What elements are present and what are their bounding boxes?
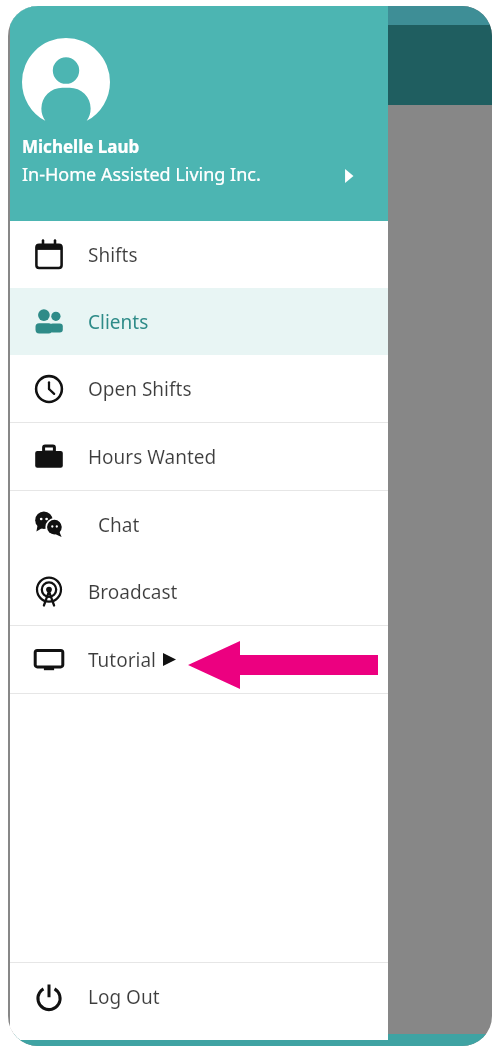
button[interactable]: Chat	[10, 491, 388, 558]
staticText: Hours Wanted	[88, 444, 217, 470]
button[interactable]: Shifts	[10, 221, 388, 288]
button[interactable]: Tutorial	[10, 626, 388, 693]
staticText: Michelle Laub	[22, 135, 140, 158]
staticText: Log Out	[88, 984, 160, 1010]
button[interactable]: Michelle Laub	[10, 6, 388, 221]
staticText: Shifts	[88, 242, 138, 268]
staticText: Broadcast	[88, 579, 178, 605]
staticText: Tutorial	[88, 647, 157, 673]
staticText: In-Home Assisted Living Inc.	[22, 162, 261, 187]
staticText: Clients	[88, 309, 149, 335]
other: Expand account	[342, 169, 356, 183]
staticText: Chat	[98, 512, 140, 538]
button[interactable]: Log Out	[10, 963, 388, 1030]
button[interactable]: Clients	[10, 288, 388, 355]
button[interactable]: Open Shifts	[10, 355, 388, 422]
staticText: Open Shifts	[88, 376, 192, 402]
button[interactable]: Hours Wanted	[10, 423, 388, 490]
button[interactable]: Broadcast	[10, 558, 388, 625]
